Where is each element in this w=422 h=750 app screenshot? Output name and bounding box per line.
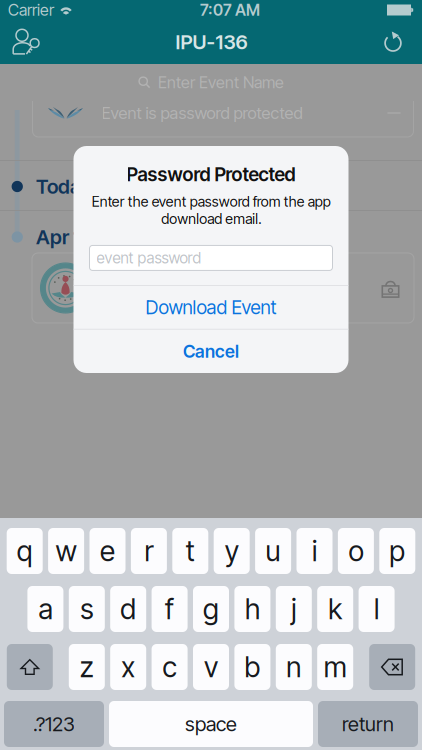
staticText: x [121,650,135,684]
staticText: i [312,534,317,568]
staticText: u [266,534,281,568]
button[interactable]: z [69,644,105,690]
staticText: Password Protected [126,163,295,186]
staticText: z [80,650,94,684]
button[interactable]: Delete [369,644,415,690]
button[interactable]: h [234,586,270,632]
staticText: Enter Event Name [158,73,284,92]
staticText: r [144,534,153,568]
button[interactable]: u [255,528,291,574]
button[interactable]: e [89,528,125,574]
button[interactable]: space [109,701,313,747]
staticText: IPU-136 [175,30,247,54]
button[interactable]: l [359,586,395,632]
button[interactable]: Shift [7,644,53,690]
staticText: v [204,650,218,684]
staticText: l [374,592,379,626]
button[interactable]: y [214,528,250,574]
staticText: q [17,534,33,568]
staticText: Apr 1, 2017 [36,225,134,249]
staticText: p [389,534,405,568]
staticText: return [342,712,394,736]
button[interactable]: d [110,586,146,632]
staticText: e [100,534,115,568]
button[interactable]: f [152,586,188,632]
button[interactable]: g [193,586,229,632]
staticText: c [163,650,177,684]
staticText: Download Event [145,296,276,319]
staticText: f [165,592,174,626]
staticText: s [80,592,93,626]
staticText: d [120,592,136,626]
staticText: Carrier [8,0,54,20]
staticText: .?123 [33,712,75,736]
staticText: o [348,534,363,568]
button[interactable]: n [276,644,312,690]
staticText: 7:07 AM [200,0,260,20]
button[interactable]: q [7,528,43,574]
button[interactable]: Cancel [73,330,348,373]
button[interactable]: m [317,644,353,690]
button[interactable]: v [193,644,229,690]
button[interactable]: b [234,644,270,690]
button[interactable]: s [69,586,105,632]
button[interactable]: j [276,586,312,632]
button[interactable]: k [317,586,353,632]
button[interactable]: r [131,528,167,574]
staticText: b [244,650,260,684]
staticText: space [185,712,237,736]
staticText: Today [36,174,91,199]
button[interactable]: t [172,528,208,574]
button[interactable]: a [27,586,63,632]
staticText: y [225,534,239,568]
staticText: w [56,534,77,568]
staticText: n [286,650,301,684]
staticText: m [324,650,347,684]
staticText: g [203,592,219,626]
button[interactable]: return [318,701,418,747]
button[interactable]: w [48,528,84,574]
button[interactable]: Account [12,27,41,56]
staticText: event password [96,249,201,267]
button[interactable]: x [110,644,146,690]
button[interactable]: i [296,528,332,574]
staticText: a [38,592,52,626]
staticText: k [328,592,342,626]
button[interactable]: o [338,528,374,574]
staticText: Event is password protected [101,103,302,123]
staticText: Enter the event password from the app do… [91,193,330,227]
button[interactable]: c [152,644,188,690]
staticText: t [186,534,195,568]
staticText: j [291,592,296,626]
button[interactable]: Refresh [382,30,405,53]
button[interactable]: .?123 [4,701,104,747]
button[interactable]: p [379,528,415,574]
staticText: Cancel [183,341,239,362]
staticText: h [245,592,260,626]
button[interactable]: Download Event [73,286,348,329]
